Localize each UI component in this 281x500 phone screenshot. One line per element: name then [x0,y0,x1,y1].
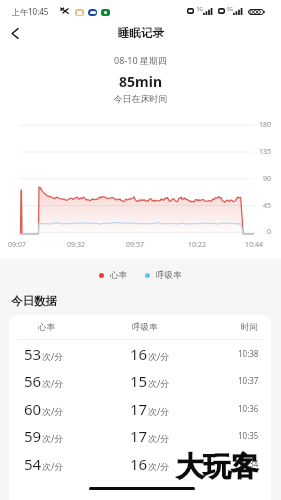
staticText: 45 [263,201,272,211]
staticText: 今日数据 [11,294,57,308]
staticText: 呼吸率 [132,322,158,333]
staticText: 15 [130,371,148,391]
button[interactable]: Back [2,20,28,46]
staticText: 心率 [110,270,127,281]
staticText: 上午10:45 [12,6,49,17]
staticText: 85min [0,72,281,91]
staticText: 180 [259,120,272,130]
staticText: 睡眠记录 [118,26,164,40]
staticText: 次/分 [148,460,170,472]
staticText: 今日在床时间 [0,93,281,104]
staticText: 135 [259,147,272,157]
staticText: 次/分 [148,432,170,444]
staticText: 16 [130,344,148,364]
staticText: 16 [130,454,148,474]
button[interactable]: 54 [9,450,271,477]
staticText: 心率 [38,322,55,333]
staticText: 0 [267,227,272,237]
staticText: 次/分 [42,377,64,389]
staticText: 次/分 [42,460,64,472]
staticText: 时间 [241,322,258,333]
staticText: 次/分 [42,405,64,417]
staticText: 5G [227,6,233,12]
staticText: 10:37 [238,375,259,386]
staticText: 90 [263,174,272,184]
staticText: 17 [130,426,148,446]
staticText: 09:07 [8,240,26,250]
staticText: 次/分 [148,377,170,389]
staticText: 54 [24,454,42,474]
staticText: 17 [130,399,148,419]
staticText: 次/分 [148,405,170,417]
staticText: 09:32 [67,240,85,250]
staticText: 5G [197,6,203,12]
staticText: 10:35 [238,430,259,441]
staticText: 次/分 [42,432,64,444]
staticText: 次/分 [42,350,64,362]
button[interactable]: 59 [9,422,271,449]
button[interactable]: 60 [9,395,271,422]
staticText: 次/分 [148,350,170,362]
staticText: 大玩客 [176,450,259,485]
staticText: 10:22 [188,240,206,250]
button[interactable]: 56 [9,367,271,394]
staticText: 08-10 星期四 [0,54,281,66]
staticText: 10:34 [238,458,259,469]
staticText: 10:38 [238,348,259,359]
button[interactable]: 53 [9,340,271,367]
staticText: 53 [24,344,42,364]
staticText: 56 [24,371,42,391]
staticText: 59 [24,426,42,446]
staticText: 60 [24,399,42,419]
staticText: 10:44 [245,240,263,250]
staticText: 10:36 [238,403,259,414]
staticText: 09:57 [126,240,144,250]
staticText: 呼吸率 [156,270,182,281]
